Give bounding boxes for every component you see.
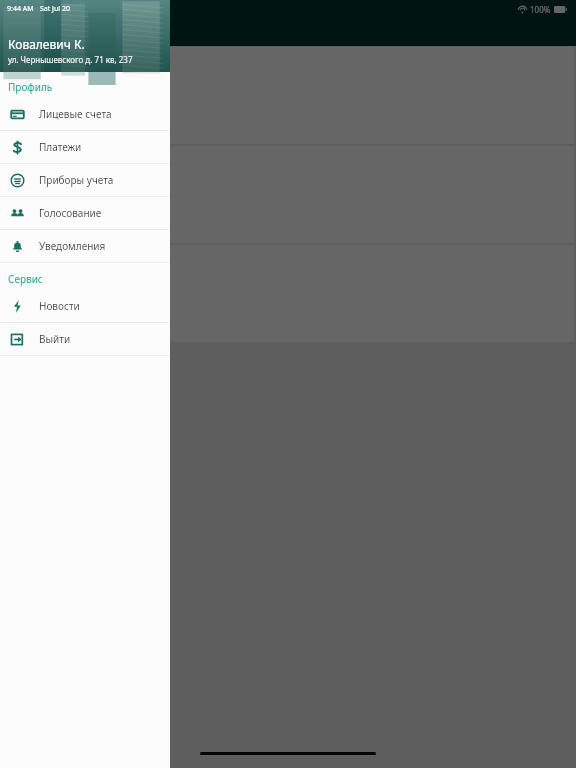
staticText: Выйти <box>39 332 71 346</box>
button[interactable]: Электроэнергия <box>2 47 574 144</box>
staticText: Голосование <box>39 206 102 220</box>
button[interactable]: Горячая вода <box>2 245 574 342</box>
button[interactable]: Приборы учета <box>0 164 170 196</box>
staticText: Холодная вода <box>66 155 146 170</box>
button[interactable]: Новости <box>0 290 170 322</box>
staticText: Приборы учета <box>39 173 114 187</box>
staticText: Уведомления <box>39 239 106 253</box>
staticText: Сервис <box>8 272 43 286</box>
staticText: Платежи <box>39 140 82 154</box>
staticText: Sat Jul 20 <box>40 4 70 14</box>
button[interactable]: Холодная вода <box>2 146 574 243</box>
staticText: Ковалевич К. <box>8 36 85 52</box>
staticText: Профиль <box>8 80 53 94</box>
button[interactable]: Лицевые счета <box>0 98 170 130</box>
button[interactable]: Выйти <box>0 323 170 355</box>
staticText: 9:44 AM <box>7 4 34 14</box>
staticText: Лицевые счета <box>39 107 112 121</box>
staticText: Приборы учета <box>66 24 163 42</box>
staticText: Новости <box>39 299 80 313</box>
button[interactable]: Голосование <box>0 197 170 229</box>
button[interactable]: Платежи <box>0 131 170 163</box>
staticText: Электроэнергия <box>66 56 153 71</box>
staticText: ул. Чернышевского д. 71 кв, 237 <box>8 54 133 65</box>
button[interactable]: Уведомления <box>0 230 170 262</box>
staticText: Горячая вода <box>66 254 138 269</box>
button[interactable] <box>0 0 576 768</box>
staticText: 100% <box>530 4 551 15</box>
